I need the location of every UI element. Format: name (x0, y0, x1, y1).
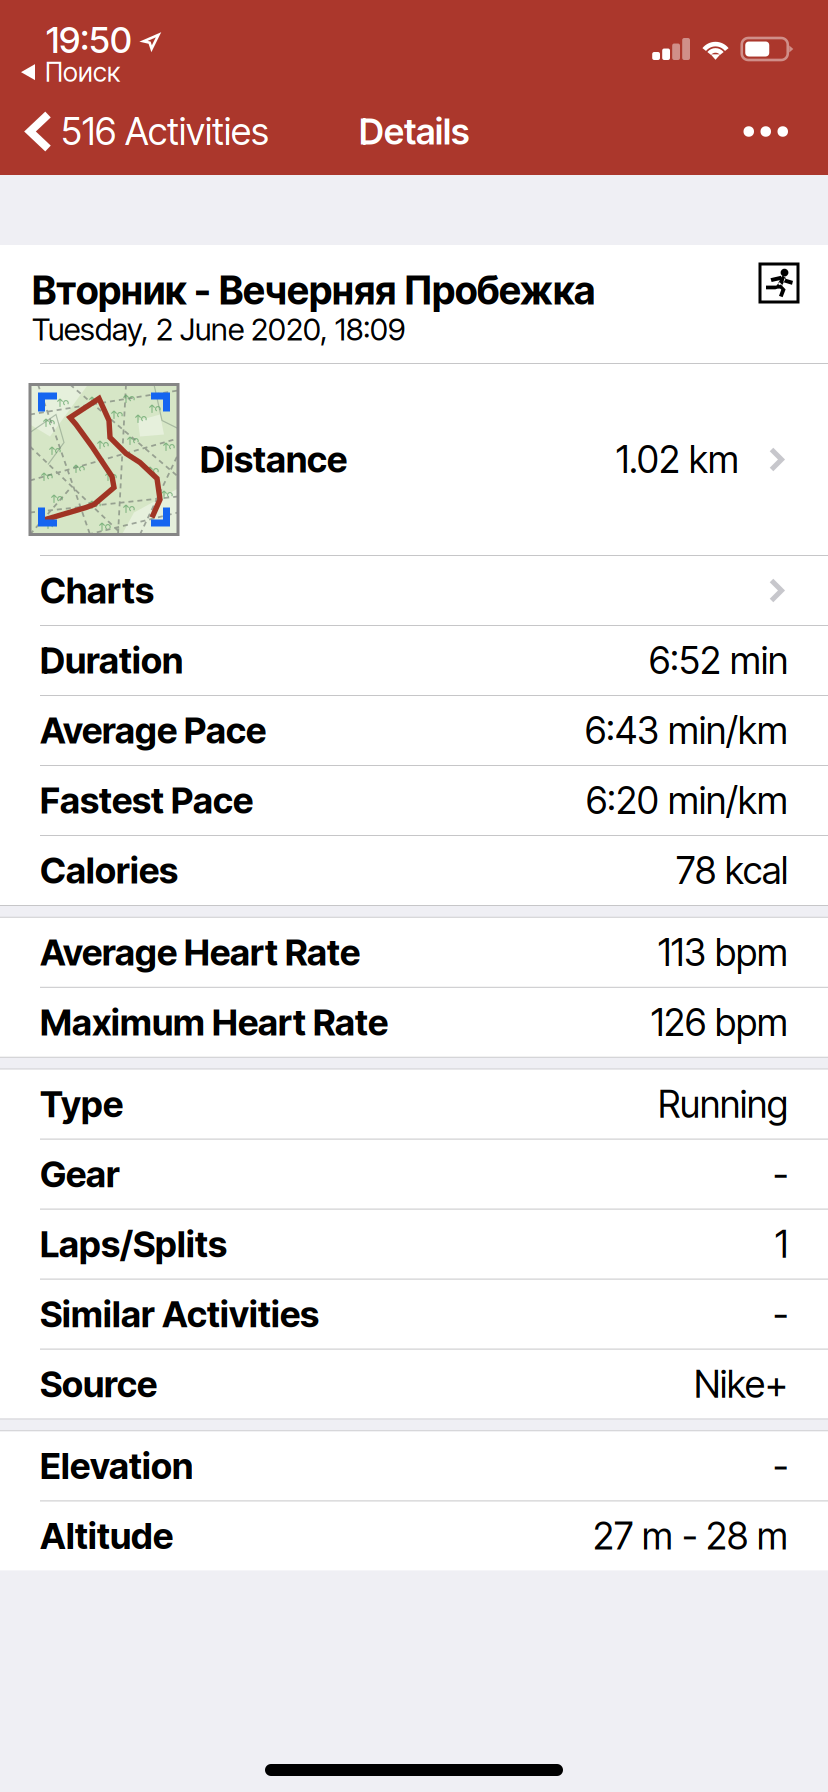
staticText: Charts (40, 569, 154, 612)
button[interactable]: Поиск (0, 0, 99, 32)
staticText: Details (359, 110, 469, 153)
staticText: Distance (200, 438, 347, 481)
staticText: Tuesday, 2 June 2020, 18:09 (32, 311, 405, 348)
button[interactable]: Source (0, 1350, 828, 1419)
staticText: 78 kcal (676, 848, 788, 893)
staticText: Similar Activities (40, 1292, 319, 1336)
staticText: 6:52 min (649, 638, 788, 683)
button[interactable]: Fastest Pace (0, 766, 828, 835)
staticText: Laps/Splits (40, 1222, 227, 1266)
button[interactable]: Charts (0, 556, 828, 625)
staticText: Gear (40, 1152, 120, 1196)
button[interactable]: Gear (0, 1140, 828, 1209)
staticText: 19:50 (46, 18, 132, 62)
staticText: - (773, 1151, 788, 1197)
button[interactable]: Altitude (0, 1501, 828, 1570)
staticText: 113 bpm (658, 930, 788, 975)
staticText: Altitude (40, 1514, 173, 1558)
button[interactable]: Duration (0, 626, 828, 695)
staticText: 6:20 min/km (586, 778, 788, 823)
button[interactable]: Laps/Splits (0, 1210, 828, 1279)
staticText: 126 bpm (651, 1000, 788, 1045)
button[interactable]: Distance (0, 364, 828, 555)
button[interactable]: Type (0, 1070, 828, 1139)
button[interactable]: Similar Activities (0, 1280, 828, 1349)
button[interactable]: Calories (0, 836, 828, 905)
staticText: - (773, 1443, 788, 1488)
button[interactable]: Average Heart Rate (0, 918, 828, 987)
button[interactable]: More options (743, 88, 828, 175)
staticText: Nike+ (694, 1361, 788, 1407)
button[interactable]: 516 Activities (0, 88, 269, 175)
staticText: 1 (775, 1221, 788, 1267)
staticText: 6:43 min/km (585, 708, 788, 753)
staticText: 27 m - 28 m (593, 1513, 788, 1558)
staticText: Type (40, 1082, 123, 1126)
staticText: 1.02 km (616, 437, 739, 482)
staticText: Calories (40, 849, 178, 892)
staticText: Fastest Pace (40, 779, 253, 822)
staticText: Average Heart Rate (40, 930, 360, 974)
staticText: Running (658, 1081, 788, 1127)
button[interactable]: Average Pace (0, 696, 828, 765)
staticText: Поиск (45, 56, 120, 88)
staticText: Elevation (40, 1444, 193, 1488)
button[interactable]: Elevation (0, 1431, 828, 1500)
staticText: 516 Activities (61, 109, 269, 154)
button[interactable]: Maximum Heart Rate (0, 988, 828, 1057)
staticText: Maximum Heart Rate (40, 1000, 388, 1044)
staticText: - (773, 1291, 788, 1337)
staticText: Source (40, 1362, 157, 1406)
staticText: Duration (40, 639, 183, 682)
staticText: Вторник - Вечерняя Пробежка (32, 267, 595, 314)
staticText: Average Pace (40, 709, 266, 752)
